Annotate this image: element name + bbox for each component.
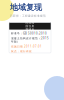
staticText: 混凝土结构设计规范（2015年版） — [11, 36, 49, 43]
staticText: 地域复现 — [10, 2, 42, 12]
staticText: 标准号：GB 50010-2010 — [11, 32, 47, 35]
staticText: 实施日期 2011-07-01 — [11, 45, 42, 48]
staticText: 中华人民共和国住房和城乡建设部 — [25, 18, 34, 34]
staticText: 已获得：工程建设标准规范 — [10, 14, 46, 18]
staticText: 状态：现行有效 — [11, 50, 32, 53]
